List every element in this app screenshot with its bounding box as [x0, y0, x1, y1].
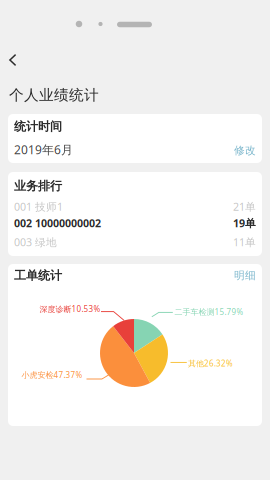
- staticText: 其他26.32%: [188, 358, 233, 369]
- staticText: 统计时间: [14, 119, 62, 134]
- staticText: 工单统计: [14, 268, 62, 283]
- button[interactable]: 返回: [0, 45, 43, 75]
- staticText: 个人业绩统计: [9, 86, 99, 104]
- button[interactable]: 修改: [0, 0, 270, 480]
- staticText: 明细: [234, 269, 256, 282]
- staticText: 业务排行: [14, 179, 62, 193]
- button[interactable]: 明细: [0, 0, 270, 480]
- staticText: 003 绿地: [14, 235, 57, 249]
- staticText: 19单: [233, 216, 256, 230]
- staticText: 21单: [233, 199, 256, 214]
- staticText: 2019年6月: [14, 142, 73, 157]
- staticText: 深度诊断10.53%: [39, 304, 100, 314]
- staticText: 小虎安检47.37%: [21, 369, 82, 380]
- staticText: 修改: [234, 144, 256, 157]
- staticText: 002 10000000002: [14, 216, 101, 230]
- staticText: 001 技师1: [14, 199, 63, 214]
- staticText: 11单: [233, 235, 256, 249]
- staticText: 二手车检测15.79%: [174, 306, 243, 317]
